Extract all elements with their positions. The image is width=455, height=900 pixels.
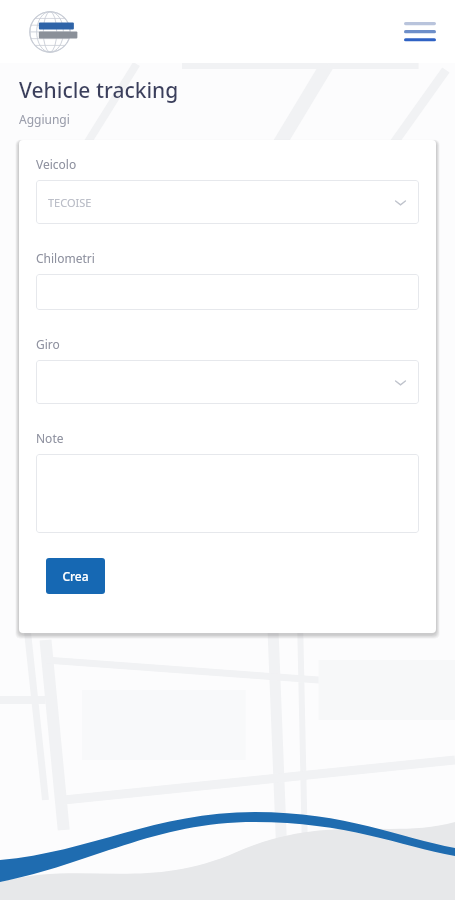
staticText: Veicolo — [36, 156, 77, 172]
button[interactable] — [36, 274, 419, 310]
staticText: Note — [36, 430, 64, 446]
staticText: Giro — [36, 336, 60, 352]
button[interactable]: Menu — [399, 15, 441, 49]
button[interactable]: TECOISE — [36, 180, 419, 224]
button[interactable] — [36, 454, 419, 533]
button[interactable]: Crea — [46, 558, 105, 594]
staticText: Chilometri — [36, 250, 95, 266]
button[interactable] — [36, 360, 419, 404]
staticText: Vehicle tracking — [19, 76, 179, 105]
staticText: Aggiungi — [19, 111, 70, 127]
staticText: Crea — [62, 568, 89, 584]
other: Faustino Trasporti logo — [22, 8, 92, 54]
staticText: TECOISE — [48, 195, 394, 210]
